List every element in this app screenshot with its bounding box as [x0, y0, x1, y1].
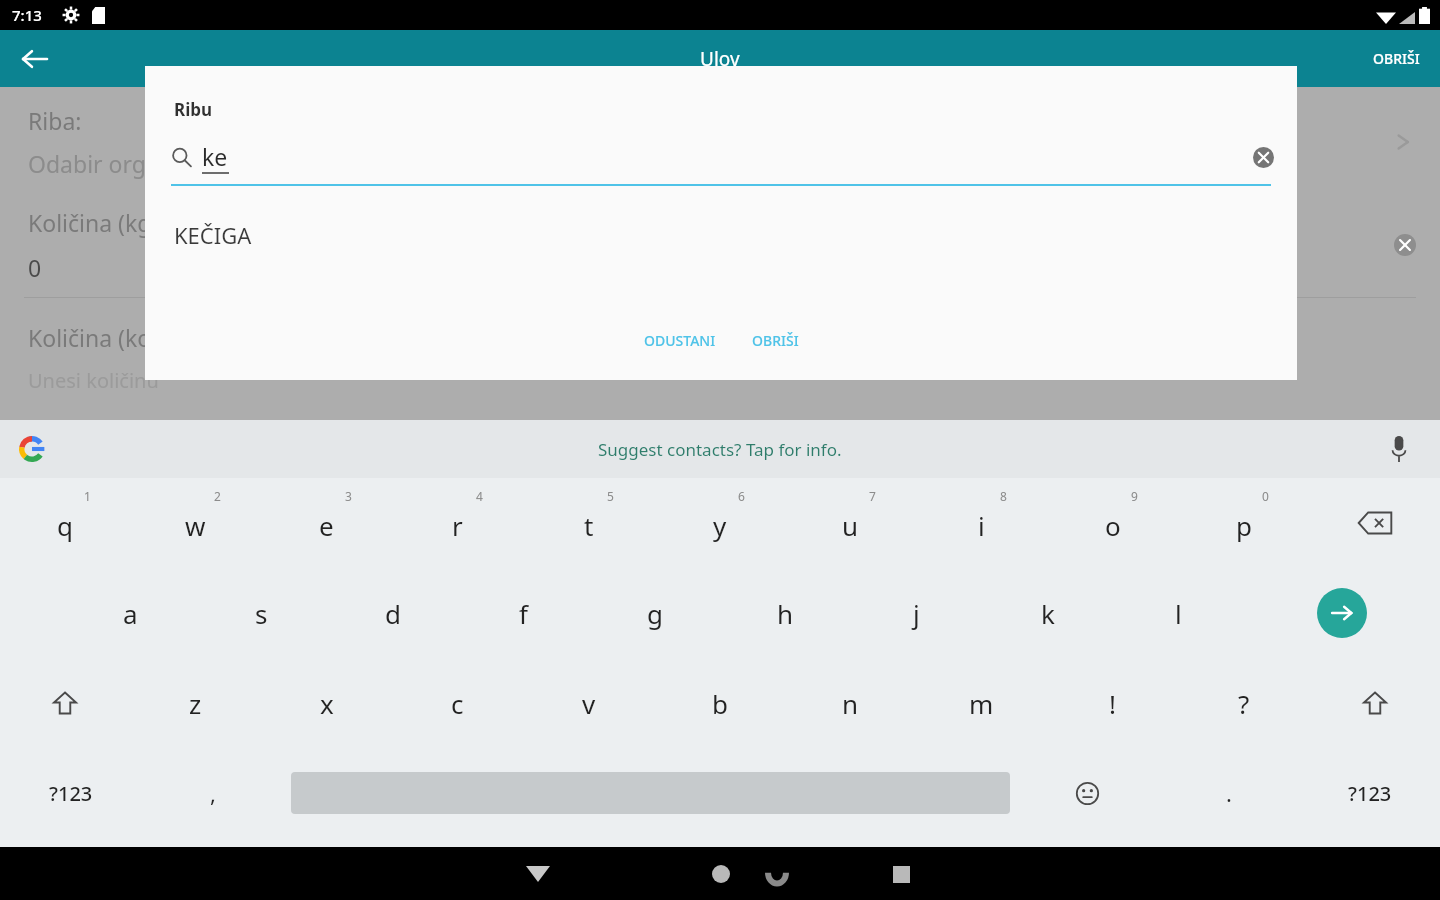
button[interactable]: 5: [523, 478, 654, 568]
button[interactable]: Backspace: [1309, 478, 1440, 568]
button[interactable]: Home: [697, 850, 745, 898]
staticText: 9: [1131, 488, 1138, 504]
button[interactable]: h: [720, 568, 851, 658]
button[interactable]: Shift: [1309, 658, 1440, 748]
button[interactable]: 2: [130, 478, 261, 568]
staticText: ?: [1238, 686, 1250, 721]
staticText: r: [452, 508, 463, 543]
staticText: Riba:: [28, 105, 82, 136]
button[interactable]: ?123: [1299, 748, 1440, 838]
staticText: j: [913, 596, 920, 631]
button[interactable]: 0: [1178, 478, 1309, 568]
button[interactable]: OBRIŠI: [1367, 43, 1426, 74]
button[interactable]: 6: [654, 478, 785, 568]
button[interactable]: Back: [10, 35, 58, 83]
staticText: o: [1105, 508, 1121, 543]
button[interactable]: 4: [392, 478, 523, 568]
button[interactable]: ,: [142, 748, 283, 838]
staticText: z: [189, 686, 202, 721]
button[interactable]: d: [327, 568, 458, 658]
button[interactable]: Riba:: [0, 105, 1440, 179]
button[interactable]: .: [1158, 748, 1299, 838]
staticText: t: [584, 508, 594, 543]
button[interactable]: k: [982, 568, 1113, 658]
staticText: d: [385, 596, 401, 631]
button[interactable]: Clear text: [1243, 137, 1283, 177]
button[interactable]: Emoji: [1017, 748, 1158, 838]
staticText: ,: [210, 778, 216, 808]
staticText: Suggest contacts? Tap for info.: [598, 438, 842, 461]
button[interactable]: 1: [0, 478, 130, 568]
button[interactable]: s: [196, 568, 327, 658]
staticText: ODUSTANI: [644, 331, 716, 350]
button[interactable]: OBRIŠI: [740, 323, 811, 358]
staticText: 4: [476, 488, 483, 504]
staticText: Ribu: [174, 98, 213, 121]
staticText: b: [712, 686, 728, 721]
staticText: 2: [214, 488, 221, 504]
button[interactable]: Enter: [1244, 568, 1440, 658]
button[interactable]: m: [916, 658, 1047, 748]
button[interactable]: Assistant: [757, 854, 797, 894]
staticText: KEČIGA: [174, 220, 252, 250]
button[interactable]: ?: [1178, 658, 1309, 748]
staticText: s: [255, 596, 268, 631]
staticText: 7:13: [12, 5, 42, 25]
staticText: 6: [738, 488, 745, 504]
staticText: Količina (kom):: [28, 322, 186, 353]
button[interactable]: 3: [261, 478, 392, 568]
staticText: Količina (kg):: [28, 207, 165, 238]
staticText: u: [842, 508, 859, 543]
staticText: i: [978, 508, 985, 543]
staticText: Odabir organizma: [28, 148, 225, 179]
staticText: w: [185, 508, 206, 543]
staticText: e: [319, 508, 334, 543]
button[interactable]: Suggest contacts? Tap for info.: [590, 430, 850, 469]
button[interactable]: v: [523, 658, 654, 748]
staticText: a: [123, 596, 138, 631]
button[interactable]: c: [392, 658, 523, 748]
staticText: ?123: [1348, 780, 1392, 807]
button[interactable]: Hide keyboard: [514, 850, 562, 898]
button[interactable]: Voice input: [1380, 430, 1418, 468]
staticText: 0: [1262, 488, 1269, 504]
staticText: OBRIŠI: [1373, 49, 1420, 68]
staticText: 7: [869, 488, 876, 504]
button[interactable]: KEČIGA: [145, 212, 1297, 258]
staticText: q: [57, 508, 73, 543]
staticText: g: [647, 596, 663, 631]
button[interactable]: ODUSTANI: [632, 323, 728, 358]
staticText: 8: [1000, 488, 1007, 504]
button[interactable]: z: [130, 658, 261, 748]
button[interactable]: f: [458, 568, 589, 658]
staticText: OBRIŠI: [752, 331, 799, 350]
button[interactable]: j: [851, 568, 982, 658]
button[interactable]: Shift: [0, 658, 130, 748]
button[interactable]: n: [785, 658, 916, 748]
staticText: !: [1109, 686, 1116, 721]
staticText: m: [969, 686, 994, 721]
staticText: p: [1236, 508, 1252, 543]
button[interactable]: b: [654, 658, 785, 748]
button[interactable]: Recent apps: [877, 850, 925, 898]
staticText: ke: [202, 141, 228, 172]
button[interactable]: 9: [1047, 478, 1178, 568]
staticText: f: [519, 596, 528, 631]
staticText: Unesi količinu: [28, 367, 159, 394]
staticText: c: [451, 686, 464, 721]
button[interactable]: !: [1047, 658, 1178, 748]
button[interactable]: g: [589, 568, 720, 658]
button[interactable]: Google: [14, 431, 50, 467]
staticText: Ulov: [700, 46, 740, 72]
staticText: n: [842, 686, 859, 721]
staticText: h: [777, 596, 794, 631]
staticText: v: [582, 686, 596, 721]
button[interactable]: 7: [785, 478, 916, 568]
staticText: 0: [28, 252, 42, 283]
button[interactable]: 8: [916, 478, 1047, 568]
button[interactable]: Space: [283, 748, 1017, 838]
button[interactable]: x: [261, 658, 392, 748]
button[interactable]: a: [65, 568, 196, 658]
button[interactable]: ?123: [0, 748, 142, 838]
button[interactable]: l: [1113, 568, 1244, 658]
